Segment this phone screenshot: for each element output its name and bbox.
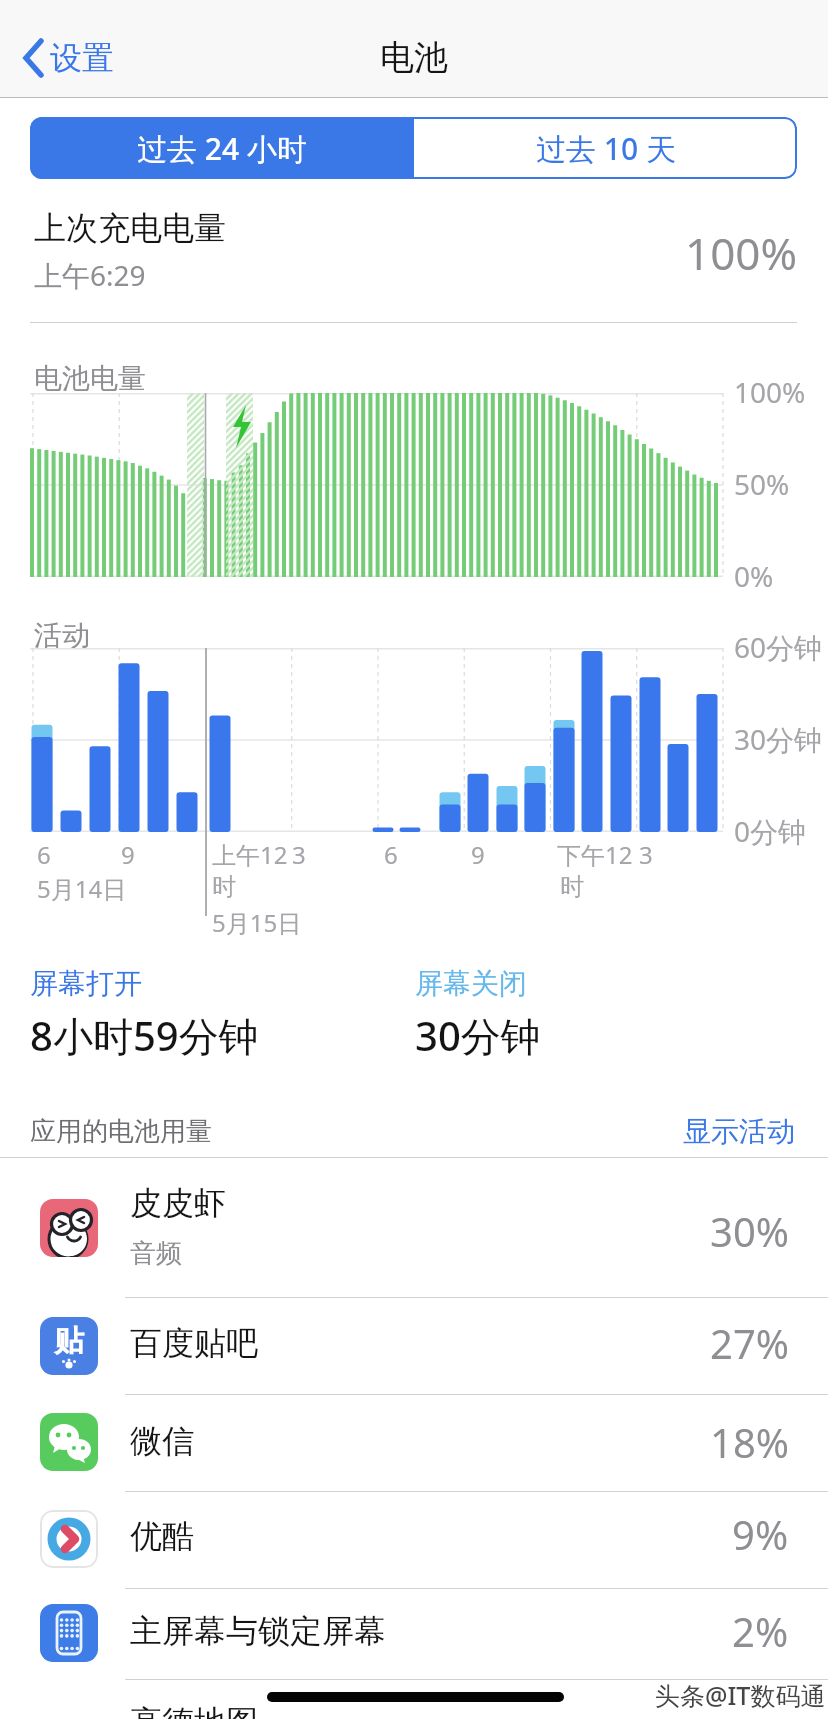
staticText: 主屏幕与锁定屏幕: [130, 1611, 386, 1651]
staticText: 百度贴吧: [130, 1323, 258, 1363]
staticText: 100%: [685, 223, 798, 283]
staticText: 上午6:29: [34, 256, 146, 294]
staticText: 应用的电池用量: [30, 1115, 212, 1148]
staticText: 2%: [732, 1604, 789, 1658]
staticText: 6: [37, 838, 51, 871]
staticText: 下午12: [557, 838, 633, 871]
staticText: 8小时59分钟: [30, 1008, 259, 1063]
button[interactable]: 高德地图: [0, 1680, 828, 1719]
staticText: 时: [212, 872, 236, 902]
staticText: 18%: [710, 1415, 789, 1469]
staticText: 30%: [710, 1204, 789, 1258]
button[interactable]: 过去 10 天: [414, 117, 797, 179]
staticText: 3: [639, 838, 653, 871]
staticText: 0分钟: [734, 812, 807, 850]
staticText: 时: [560, 872, 584, 902]
staticText: 上午12: [212, 838, 288, 871]
staticText: 显示活动: [683, 1114, 795, 1149]
staticText: 贴: [54, 1322, 84, 1360]
staticText: 设置: [50, 38, 114, 78]
staticText: 屏幕关闭: [415, 966, 527, 1001]
staticText: 9: [471, 838, 485, 871]
staticText: 高德地图: [130, 1702, 258, 1719]
staticText: 微信: [130, 1421, 194, 1461]
staticText: 50%: [734, 465, 790, 503]
staticText: 6: [384, 838, 398, 871]
button[interactable]: 优酷: [0, 1492, 828, 1588]
staticText: 30分钟: [734, 720, 823, 758]
staticText: 9%: [732, 1507, 789, 1561]
staticText: 电池电量: [34, 361, 146, 396]
staticText: 屏幕打开: [30, 966, 142, 1001]
staticText: 30分钟: [415, 1008, 541, 1063]
staticText: 皮皮虾: [130, 1183, 226, 1223]
button[interactable]: 微信: [0, 1395, 828, 1491]
staticText: 活动: [34, 618, 90, 653]
staticText: 电池: [380, 36, 448, 79]
button[interactable]: 皮皮虾: [0, 1158, 828, 1297]
staticText: 100%: [734, 373, 806, 411]
button[interactable]: 设置: [22, 38, 114, 78]
staticText: 60分钟: [734, 628, 823, 666]
button[interactable]: 过去 24 小时: [30, 117, 414, 179]
button[interactable]: 主屏幕与锁定屏幕: [0, 1589, 828, 1679]
staticText: 0%: [734, 557, 774, 595]
staticText: 过去 10 天: [536, 128, 676, 169]
staticText: 5月14日: [37, 872, 127, 905]
staticText: 上次充电电量: [34, 208, 226, 248]
staticText: 音频: [130, 1237, 182, 1270]
button[interactable]: 贴: [0, 1298, 828, 1394]
staticText: 过去 24 小时: [137, 128, 307, 169]
staticText: 27%: [710, 1316, 789, 1370]
staticText: 头条@IT数码通: [655, 1678, 826, 1712]
button[interactable]: 显示活动: [595, 1114, 795, 1149]
staticText: 优酷: [130, 1516, 194, 1556]
staticText: 5月15日: [212, 906, 302, 939]
staticText: 3: [292, 838, 306, 871]
staticText: 9: [121, 838, 135, 871]
